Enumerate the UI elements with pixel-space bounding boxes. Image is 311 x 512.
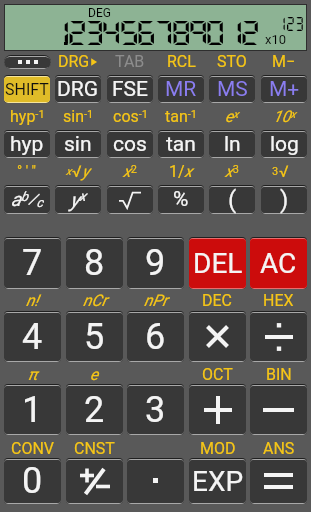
other: Sign change: [80, 467, 110, 495]
button[interactable]: ln: [209, 130, 255, 158]
button[interactable]: cos: [107, 130, 153, 158]
staticText: √: [72, 162, 82, 181]
staticText: CONV: [11, 439, 55, 458]
staticText: CNST: [74, 439, 115, 458]
staticText: 9: [186, 17, 211, 48]
staticText: 9: [145, 242, 166, 284]
staticText: AC: [260, 247, 297, 280]
staticText: DRG: [58, 52, 90, 71]
staticText: 2: [65, 17, 90, 48]
button[interactable]: Plus: [189, 384, 246, 435]
staticText: x: [66, 165, 72, 178]
button[interactable]: 6: [127, 311, 184, 362]
button[interactable]: M+: [261, 75, 307, 103]
staticText: 8: [169, 17, 194, 48]
button[interactable]: %: [158, 185, 204, 214]
staticText: M−: [272, 52, 296, 71]
button[interactable]: 7: [4, 237, 61, 289]
staticText: y: [82, 162, 90, 181]
staticText: FSE: [112, 77, 149, 102]
button[interactable]: DRG: [55, 75, 101, 103]
button[interactable]: 8: [66, 237, 123, 289]
button[interactable]: 4: [4, 311, 61, 362]
button[interactable]: Decimal point: [127, 458, 184, 504]
staticText: 4: [99, 17, 124, 48]
staticText: x10: [265, 32, 287, 47]
staticText: 10x: [273, 107, 296, 126]
staticText: 6: [134, 17, 159, 48]
button[interactable]: Multiply: [189, 311, 246, 362]
staticText: SHIFT: [5, 80, 49, 99]
other: Plus: [204, 396, 232, 424]
button[interactable]: 0: [4, 458, 61, 504]
staticText: ): [280, 186, 289, 214]
button[interactable]: [107, 185, 153, 214]
staticText: %: [173, 187, 189, 212]
staticText: EXP: [192, 465, 244, 498]
staticText: 1: [221, 17, 246, 48]
staticText: 3: [82, 17, 107, 48]
other: Divide: [265, 325, 293, 349]
button[interactable]: ): [261, 185, 307, 214]
staticText: 5: [117, 17, 142, 48]
staticText: TAB: [115, 52, 145, 71]
staticText: STO: [217, 52, 247, 71]
button[interactable]: EXP: [189, 458, 246, 504]
button[interactable]: SHIFT: [4, 75, 50, 103]
button[interactable]: 2: [66, 384, 123, 435]
button[interactable]: hyp: [4, 130, 50, 158]
staticText: M+: [269, 77, 300, 102]
button[interactable]: Equals: [250, 458, 307, 504]
staticText: cos-1: [113, 107, 148, 126]
button[interactable]: log: [261, 130, 307, 158]
button[interactable]: 5: [66, 311, 123, 362]
staticText: 5: [84, 316, 105, 358]
staticText: yx: [70, 188, 86, 212]
staticText: 3: [145, 389, 166, 431]
button[interactable]: MR: [158, 75, 204, 103]
staticText: HEX: [263, 291, 294, 310]
button[interactable]: More options: [4, 55, 51, 69]
button[interactable]: tan: [158, 130, 204, 158]
button[interactable]: 3: [127, 384, 184, 435]
staticText: nPr: [144, 291, 168, 310]
staticText: DEL: [193, 247, 243, 280]
staticText: x2: [123, 162, 137, 181]
staticText: ln: [224, 132, 241, 157]
staticText: RCL: [167, 52, 196, 71]
staticText: n!: [26, 291, 39, 310]
staticText: BIN: [266, 365, 292, 384]
staticText: OCT: [202, 365, 233, 384]
button[interactable]: DEL: [189, 237, 246, 289]
staticText: 2: [238, 17, 263, 48]
button[interactable]: 9: [127, 237, 184, 289]
other: Minus: [263, 396, 294, 424]
staticText: 2: [84, 389, 105, 431]
button[interactable]: ab⁄c: [4, 185, 50, 214]
button[interactable]: MS: [209, 75, 255, 103]
button[interactable]: Divide: [250, 311, 307, 362]
button[interactable]: Sign change: [66, 458, 123, 504]
staticText: sin-1: [63, 107, 94, 126]
staticText: sin: [64, 132, 92, 157]
button[interactable]: yx: [55, 185, 101, 214]
staticText: e: [90, 365, 99, 384]
staticText: MR: [165, 77, 197, 102]
staticText: DRG: [57, 77, 99, 102]
button[interactable]: AC: [250, 237, 307, 289]
button[interactable]: FSE: [107, 75, 153, 103]
staticText: ex: [225, 107, 239, 126]
staticText: 1: [22, 389, 43, 431]
staticText: π: [28, 365, 38, 384]
button[interactable]: 1: [4, 384, 61, 435]
staticText: ° ′ ″: [17, 163, 37, 179]
button[interactable]: (: [209, 185, 255, 214]
staticText: DEC: [202, 291, 233, 310]
staticText: 1: [48, 17, 73, 48]
other: Multiply: [206, 325, 229, 348]
button[interactable]: sin: [55, 130, 101, 158]
staticText: 0: [22, 460, 43, 502]
staticText: MS: [217, 77, 248, 102]
button[interactable]: Minus: [250, 384, 307, 435]
staticText: tan: [166, 132, 196, 157]
